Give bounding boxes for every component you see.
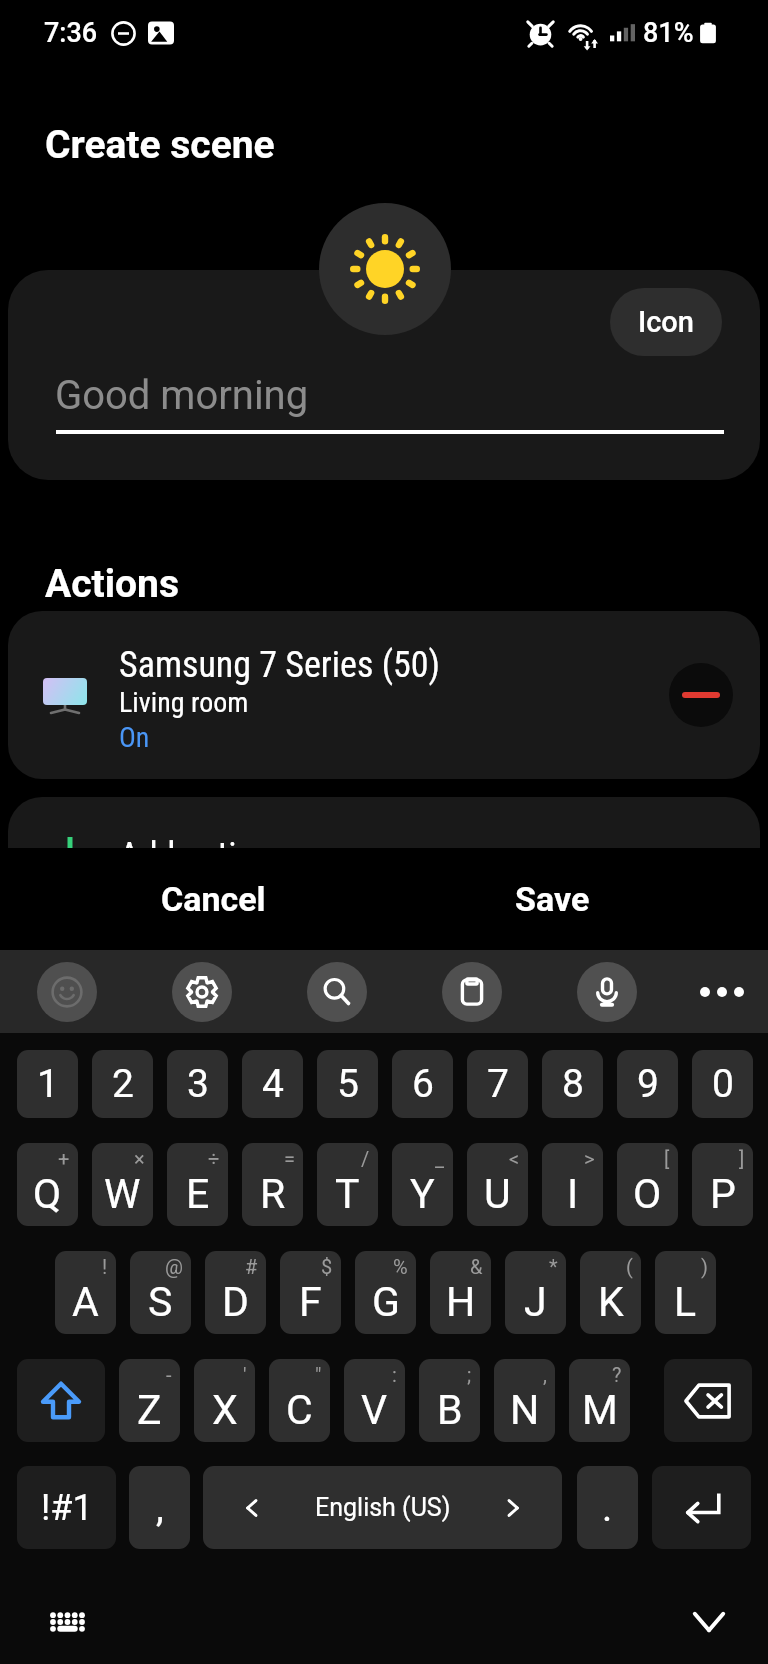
staticText: " [315,1363,322,1386]
staticText: L [674,1278,697,1326]
button[interactable]: Voice input [577,962,637,1022]
button[interactable]: N [494,1359,555,1442]
button[interactable]: C [269,1359,330,1442]
button[interactable]: B [419,1359,480,1442]
staticText: _ [435,1147,445,1170]
button[interactable]: , [129,1466,190,1549]
staticText: 4 [262,1061,284,1107]
staticText: + [58,1147,70,1170]
button[interactable]: M [569,1359,630,1442]
button[interactable]: X [194,1359,255,1442]
staticText: O [633,1170,662,1218]
button[interactable]: P [692,1143,753,1226]
staticText: P [710,1170,736,1218]
button[interactable]: 2 [92,1050,153,1118]
staticText: 8 [562,1061,584,1107]
staticText: Samsung 7 Series (50) [119,644,440,686]
button[interactable]: T [317,1143,378,1226]
staticText: # [245,1255,258,1278]
staticText: A [72,1278,99,1326]
button[interactable]: English (US) [203,1466,562,1549]
button[interactable]: Keyboard settings [172,962,232,1022]
button[interactable]: More options [692,962,752,1022]
button[interactable]: Search [307,962,367,1022]
staticText: English (US) [315,1493,451,1522]
button[interactable]: H [430,1251,491,1334]
button[interactable]: 3 [167,1050,228,1118]
button[interactable]: . [577,1466,638,1549]
staticText: On [119,721,150,754]
staticText: X [212,1386,238,1434]
button[interactable]: Samsung 7 Series (50) [8,611,760,779]
button[interactable]: 5 [317,1050,378,1118]
button[interactable]: Save [452,848,652,950]
button[interactable]: Shift [17,1359,105,1442]
staticText: Good morning [55,372,309,419]
button[interactable]: Icon [610,288,722,356]
button[interactable]: D [205,1251,266,1334]
staticText: !#1 [41,1487,93,1529]
staticText: H [446,1278,476,1326]
button[interactable]: 0 [692,1050,753,1118]
button[interactable]: Enter [652,1466,751,1549]
button[interactable]: Emoji [37,962,97,1022]
button[interactable]: !#1 [17,1466,116,1549]
staticText: ; [467,1363,472,1386]
button[interactable]: S [130,1251,191,1334]
button[interactable]: 8 [542,1050,603,1118]
button[interactable]: Change keyboard [37,1592,97,1652]
button[interactable]: V [344,1359,405,1442]
staticText: N [510,1386,540,1434]
button[interactable]: A [55,1251,116,1334]
button[interactable]: R [242,1143,303,1226]
button[interactable]: Y [392,1143,453,1226]
button[interactable]: Clipboard [442,962,502,1022]
staticText: Y [410,1170,435,1218]
staticText: ) [701,1255,708,1278]
button[interactable]: 9 [617,1050,678,1118]
button[interactable]: 7 [467,1050,528,1118]
button[interactable]: J [505,1251,566,1334]
staticText: U [484,1170,511,1218]
button[interactable]: Cancel [113,848,313,950]
staticText: T [335,1170,360,1218]
button[interactable]: 1 [17,1050,78,1118]
staticText: Add action [119,835,273,877]
staticText: 5 [337,1061,359,1107]
staticText: Z [137,1386,162,1434]
button[interactable]: Q [17,1143,78,1226]
staticText: Q [33,1170,62,1218]
button[interactable]: K [580,1251,641,1334]
staticText: - [166,1363,172,1386]
staticText: 9 [637,1061,659,1107]
button[interactable]: Z [119,1359,180,1442]
staticText: × [134,1147,145,1170]
button[interactable]: W [92,1143,153,1226]
staticText: 1 [37,1061,59,1107]
button[interactable]: I [542,1143,603,1226]
button[interactable]: Remove action [669,663,733,727]
staticText: K [598,1278,624,1326]
button[interactable]: E [167,1143,228,1226]
button[interactable]: G [355,1251,416,1334]
button[interactable]: Choose scene icon [319,203,451,335]
button[interactable]: O [617,1143,678,1226]
staticText: 81% [643,17,694,49]
button[interactable]: 4 [242,1050,303,1118]
button[interactable]: F [280,1251,341,1334]
staticText: 7 [487,1061,509,1107]
staticText: 6 [412,1061,434,1107]
staticText: S [148,1278,173,1326]
staticText: 2 [112,1061,134,1107]
staticText: 7:36 [44,17,98,49]
staticText: : [392,1363,397,1386]
button[interactable]: Add action [8,797,760,957]
button[interactable]: Backspace [664,1359,752,1442]
staticText: ' [243,1363,247,1386]
staticText: @ [165,1255,183,1278]
button[interactable]: 6 [392,1050,453,1118]
staticText: / [361,1147,370,1170]
button[interactable]: L [655,1251,716,1334]
button[interactable]: Hide keyboard [679,1592,739,1652]
button[interactable]: U [467,1143,528,1226]
